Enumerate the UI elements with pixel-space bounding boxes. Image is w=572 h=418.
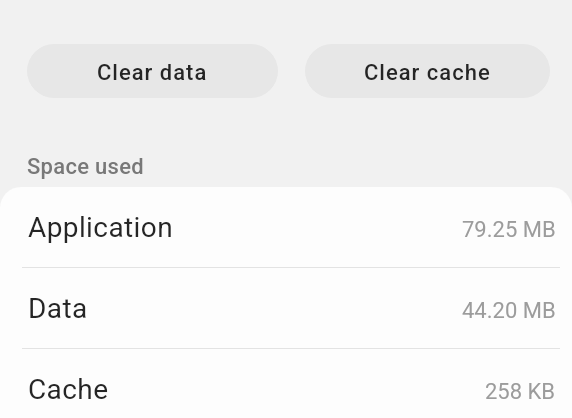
button[interactable]: Clear data [27,44,278,98]
button[interactable]: Clear cache [305,44,550,98]
staticText: Cache [28,373,109,406]
staticText: Clear data [97,60,208,86]
staticText: Space used [27,154,145,180]
staticText: Application [28,211,174,244]
button[interactable]: Application [0,187,572,268]
button[interactable]: Data [0,268,572,349]
staticText: 258 KB [485,379,556,405]
staticText: 79.25 MB [462,217,556,243]
staticText: Data [28,292,88,325]
staticText: 44.20 MB [462,298,556,324]
button[interactable]: Cache [0,349,572,418]
staticText: Clear cache [364,60,491,86]
